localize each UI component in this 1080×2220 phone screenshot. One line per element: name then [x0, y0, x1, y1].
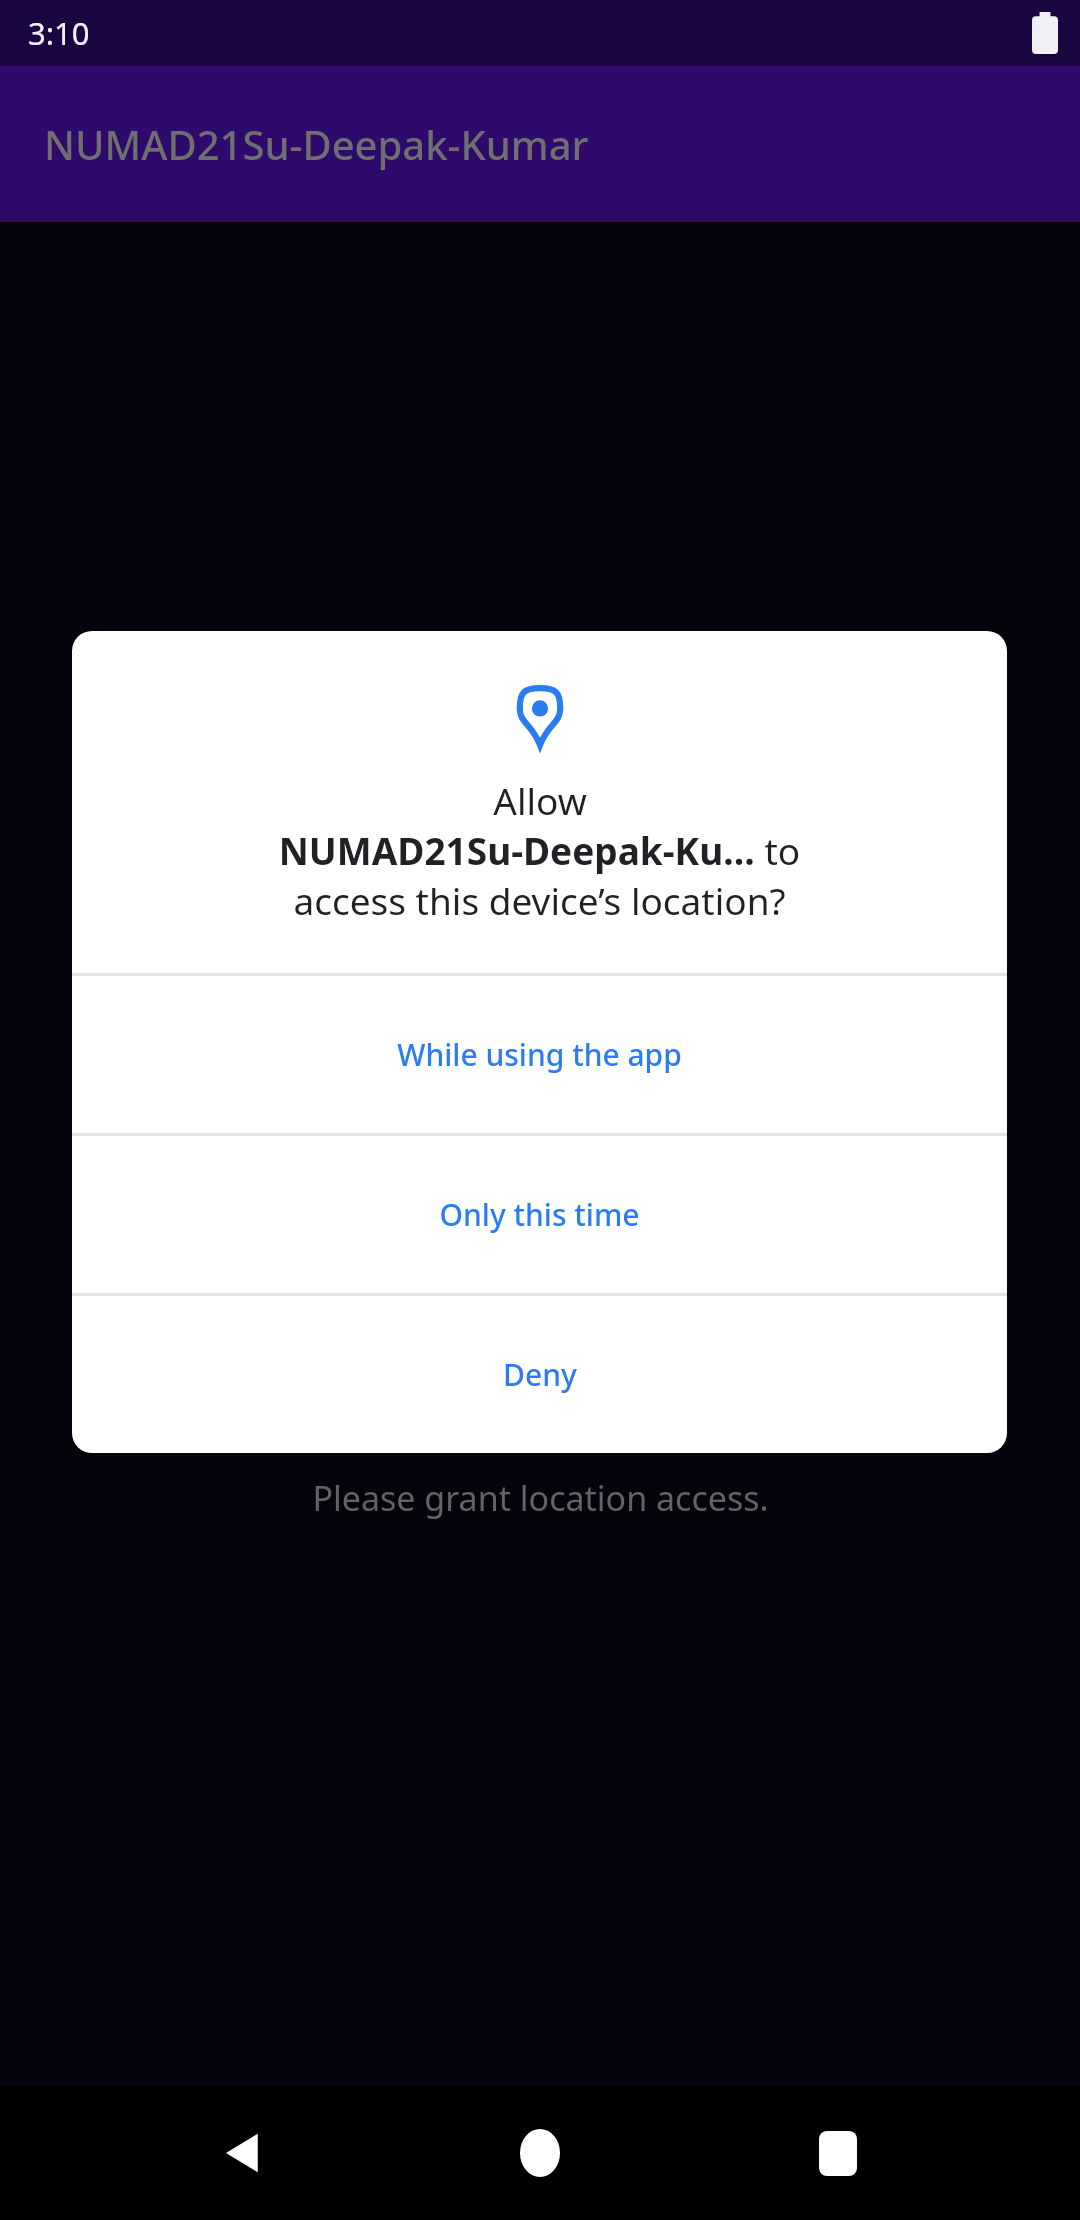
staticText: Only this time [439, 1194, 640, 1235]
staticText: access this device’s location? [112, 875, 967, 925]
button[interactable]: Only this time [72, 1136, 1007, 1293]
staticText: Please grant location access. [312, 1475, 769, 1521]
staticText: NUMAD21Su-Deepak-Ku… to [112, 825, 967, 875]
button[interactable]: Deny [72, 1296, 1007, 1453]
button[interactable]: Home [485, 2098, 595, 2208]
staticText: Allow [493, 775, 587, 825]
staticText: Deny [503, 1354, 577, 1395]
staticText: 3:10 [28, 12, 90, 54]
staticText: While using the app [397, 1034, 682, 1075]
button[interactable]: Back [188, 2098, 298, 2208]
button[interactable]: Recent apps [783, 2098, 893, 2208]
button[interactable]: While using the app [72, 976, 1007, 1133]
staticText: NUMAD21Su-Deepak-Kumar [44, 117, 589, 171]
